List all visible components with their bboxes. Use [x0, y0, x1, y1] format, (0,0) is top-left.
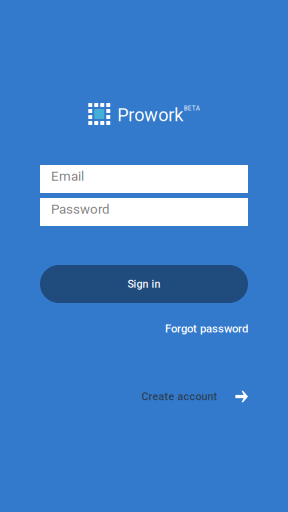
staticText: Sign in	[127, 278, 160, 290]
staticText: BETA	[184, 104, 200, 112]
staticText: Create account	[141, 390, 217, 403]
button[interactable]: Forgot password	[165, 322, 248, 335]
staticText: Forgot password	[165, 322, 248, 335]
button[interactable]: Sign in	[40, 265, 248, 303]
staticText: Email	[51, 168, 84, 184]
staticText: Prowork	[117, 104, 183, 126]
button[interactable]: Create account	[141, 390, 248, 403]
staticText: Password	[51, 201, 110, 217]
